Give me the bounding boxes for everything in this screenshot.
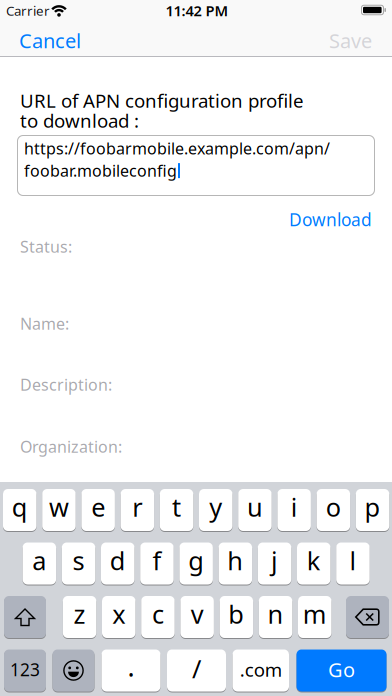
staticText: Organization: [20, 436, 122, 457]
button[interactable]: Shift [4, 595, 46, 638]
staticText: foobar.mobileconfig [24, 160, 177, 181]
staticText: s [73, 544, 85, 577]
button[interactable]: z [63, 595, 96, 638]
button[interactable]: i [277, 488, 311, 531]
staticText: u [247, 490, 263, 524]
staticText: f [152, 544, 161, 577]
staticText: / [192, 652, 201, 685]
staticText: Description: [20, 374, 112, 395]
staticText: w [49, 490, 69, 524]
button[interactable]: x [102, 595, 135, 638]
staticText: 123 [10, 658, 40, 681]
button[interactable]: Emoji [52, 649, 94, 692]
button[interactable]: Save [282, 25, 372, 55]
button[interactable]: h [219, 542, 252, 585]
button[interactable]: . [101, 649, 160, 692]
button[interactable]: l [336, 542, 370, 585]
button[interactable]: j [258, 542, 291, 585]
staticText: y [209, 490, 222, 524]
staticText: . [127, 649, 134, 684]
staticText: o [326, 490, 341, 524]
staticText: m [303, 597, 327, 631]
button[interactable]: b [220, 595, 253, 638]
button[interactable]: .com [232, 649, 289, 692]
staticText: to download : [20, 108, 139, 133]
button[interactable]: q [3, 488, 36, 531]
staticText: b [228, 597, 244, 631]
button[interactable]: Go [296, 649, 386, 692]
staticText: z [73, 597, 85, 631]
staticText: URL of APN configuration profile [20, 88, 304, 113]
button[interactable]: Download [252, 205, 372, 233]
button[interactable]: 123 [4, 649, 46, 692]
button[interactable]: v [180, 595, 214, 638]
staticText: Save [329, 27, 372, 54]
staticText: e [91, 490, 105, 524]
button[interactable]: e [81, 488, 115, 531]
staticText: n [268, 597, 284, 631]
staticText: Status: [20, 236, 72, 257]
staticText: p [365, 490, 381, 524]
staticText: Go [328, 656, 355, 683]
button[interactable]: y [199, 488, 232, 531]
button[interactable]: u [238, 488, 272, 531]
button[interactable]: g [179, 542, 213, 585]
staticText: d [110, 544, 126, 577]
staticText: Name: [20, 313, 69, 334]
staticText: j [271, 544, 278, 577]
staticText: r [132, 490, 142, 524]
button[interactable]: a [23, 542, 56, 585]
staticText: Carrier [6, 2, 50, 19]
staticText: h [227, 544, 243, 577]
staticText: v [191, 597, 204, 631]
button[interactable]: c [141, 595, 175, 638]
button[interactable]: r [121, 488, 154, 531]
button[interactable]: / [167, 649, 226, 692]
staticText: t [172, 490, 181, 524]
staticText: https://foobarmobile.example.com/apn/ [24, 138, 330, 159]
staticText: Cancel [19, 27, 81, 54]
staticText: 11:42 PM [165, 1, 228, 20]
staticText: a [32, 544, 46, 577]
button[interactable]: Cancel [19, 25, 129, 55]
button[interactable]: o [317, 488, 350, 531]
button[interactable]: f [140, 542, 174, 585]
button[interactable]: s [62, 542, 95, 585]
staticText: x [112, 597, 125, 631]
button[interactable]: p [356, 488, 389, 531]
button[interactable]: w [42, 488, 76, 531]
staticText: c [152, 597, 164, 631]
staticText: g [188, 544, 204, 577]
button[interactable]: n [259, 595, 292, 638]
staticText: i [291, 490, 298, 524]
button[interactable]: m [298, 595, 331, 638]
staticText: k [307, 544, 321, 577]
staticText: Download [289, 208, 372, 231]
button[interactable]: t [160, 488, 193, 531]
staticText: q [12, 490, 28, 524]
button[interactable]: Delete [346, 595, 389, 638]
button[interactable]: d [101, 542, 134, 585]
button[interactable]: k [297, 542, 330, 585]
staticText: .com [240, 657, 282, 682]
staticText: l [349, 544, 356, 577]
